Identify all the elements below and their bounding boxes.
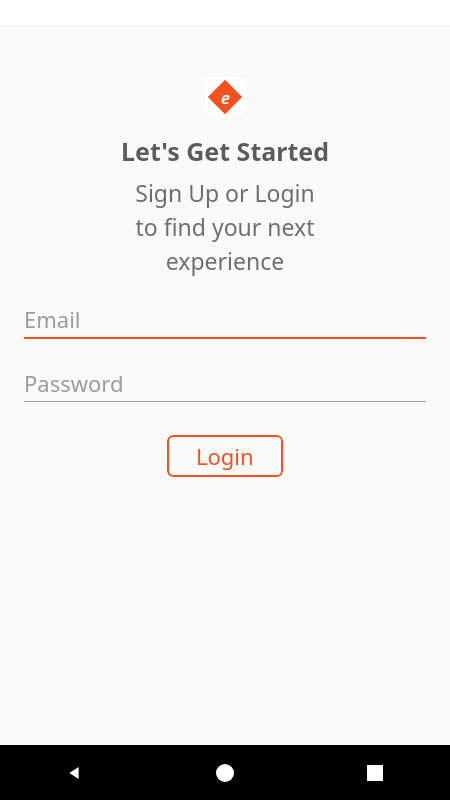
staticText: Email — [24, 304, 81, 334]
button[interactable]: Password — [24, 365, 426, 402]
staticText: e — [221, 86, 230, 109]
button[interactable]: Back — [0, 745, 150, 800]
staticText: Password — [24, 368, 124, 398]
button[interactable]: Recent apps — [300, 745, 450, 800]
button[interactable]: Login — [167, 435, 283, 477]
button[interactable]: Email — [24, 301, 426, 339]
staticText: Sign Up or Login to find your next exper… — [135, 177, 315, 276]
staticText: Let's Get Started — [121, 134, 329, 168]
button[interactable]: Home — [150, 745, 300, 800]
staticText: Login — [196, 441, 254, 471]
